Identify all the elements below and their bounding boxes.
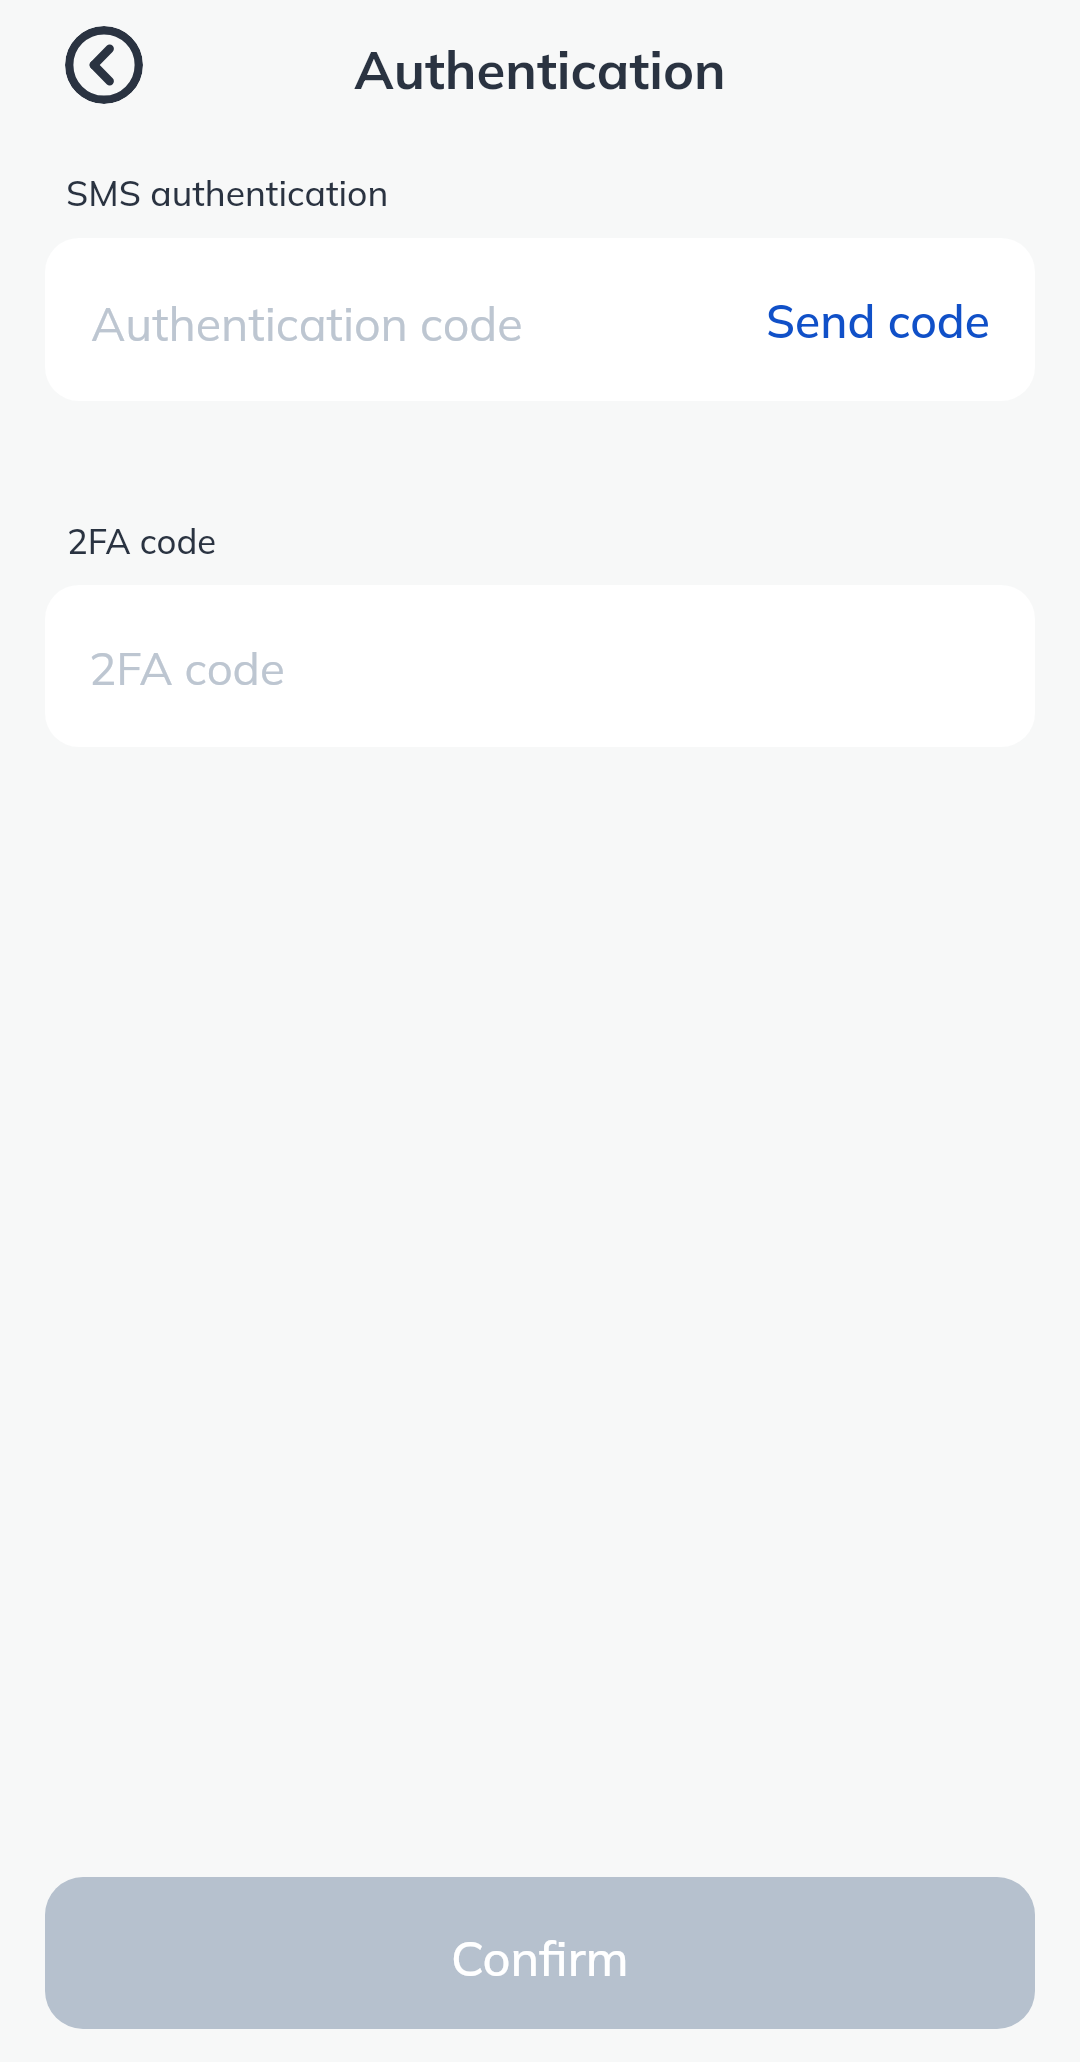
staticText: Confirm	[451, 1927, 629, 1988]
staticText: 2FA code	[89, 639, 285, 696]
button[interactable]: Confirm	[45, 1877, 1035, 2029]
staticText: SMS authentication	[66, 170, 389, 214]
staticText: Authentication code	[91, 294, 523, 352]
staticText: 2FA code	[67, 519, 217, 562]
button[interactable]: 2FA code	[45, 585, 1035, 747]
button[interactable]: Authentication code	[45, 238, 1035, 401]
staticText: Send code	[766, 292, 990, 350]
button[interactable]: Send code	[766, 238, 990, 401]
staticText: Authentication	[0, 36, 1080, 102]
button[interactable]: Back	[65, 26, 143, 104]
